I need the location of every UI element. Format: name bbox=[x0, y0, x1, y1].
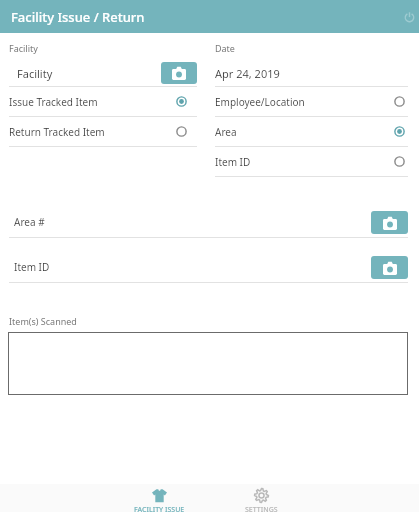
button[interactable]: Area # bbox=[0, 207, 419, 237]
staticText: Apr 24, 2019 bbox=[215, 66, 280, 81]
staticText: Item ID bbox=[215, 155, 394, 169]
staticText: Facility Issue / Return bbox=[11, 8, 145, 26]
button[interactable]: Settings bbox=[223, 484, 299, 512]
staticText: Item(s) Scanned bbox=[9, 315, 77, 327]
staticText: Area bbox=[215, 125, 394, 139]
button[interactable]: Employee/Location bbox=[209, 87, 419, 116]
staticText: Employee/Location bbox=[215, 95, 394, 109]
button[interactable]: Issue Tracked Item bbox=[0, 87, 209, 116]
button[interactable]: Return Tracked Item bbox=[0, 117, 209, 146]
staticText: Area # bbox=[14, 215, 371, 229]
staticText: Facility bbox=[17, 66, 161, 81]
other: Facility Issue bbox=[152, 488, 167, 503]
button[interactable]: Facility bbox=[0, 60, 209, 86]
button[interactable] bbox=[8, 332, 408, 395]
button[interactable]: Facility Issue bbox=[121, 484, 197, 512]
button[interactable]: Item ID bbox=[0, 252, 419, 282]
staticText: Return Tracked Item bbox=[9, 125, 176, 139]
button[interactable]: Scan with camera bbox=[161, 62, 197, 84]
staticText: Facility bbox=[9, 42, 38, 54]
button[interactable]: Apr 24, 2019 bbox=[209, 60, 419, 86]
button[interactable]: Scan with camera bbox=[371, 211, 408, 234]
button[interactable]: Refresh bbox=[399, 7, 419, 27]
staticText: Item ID bbox=[14, 260, 371, 274]
staticText: Date bbox=[215, 42, 235, 54]
other: Settings bbox=[254, 488, 269, 503]
button[interactable]: Scan with camera bbox=[371, 256, 408, 279]
staticText: Issue Tracked Item bbox=[9, 95, 176, 109]
staticText: FACILITY ISSUE bbox=[134, 505, 185, 512]
staticText: SETTINGS bbox=[245, 505, 278, 512]
button[interactable]: Area bbox=[209, 117, 419, 146]
button[interactable]: Item ID bbox=[209, 147, 419, 176]
